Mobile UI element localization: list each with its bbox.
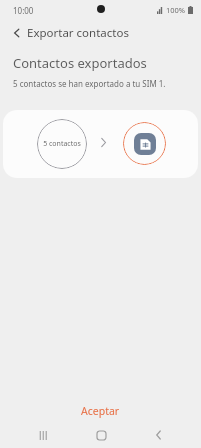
button[interactable]: Home [88,422,114,448]
staticText: 5 contactos [43,139,81,149]
staticText: 100% [166,5,186,15]
staticText: 10:00 [13,5,34,16]
button[interactable]: Back [6,22,28,44]
button[interactable]: Recents [30,422,56,448]
staticText: Contactos exportados [13,54,147,72]
staticText: Exportar contactos [27,25,129,41]
button[interactable]: Back [145,422,171,448]
button[interactable]: 5 contactos [3,110,198,178]
button[interactable]: Aceptar [0,398,201,424]
staticText: Aceptar [81,404,120,418]
button[interactable]: SIM 1 [123,122,166,165]
staticText: 5 contactos se han exportado a tu SIM 1. [13,78,166,89]
